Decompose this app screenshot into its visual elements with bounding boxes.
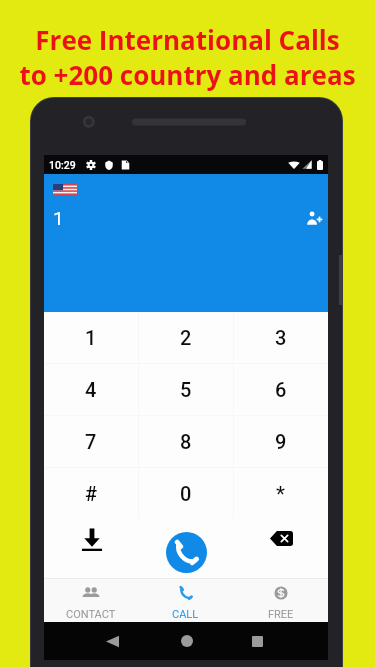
staticText: 4: [85, 378, 97, 401]
button[interactable]: *: [233, 467, 328, 519]
button[interactable]: 6: [233, 363, 328, 415]
staticText: to +200 country and areas: [19, 57, 356, 92]
staticText: CALL: [172, 608, 199, 621]
button[interactable]: 1: [44, 312, 138, 363]
button[interactable]: Call: [166, 532, 207, 573]
button[interactable]: CALL: [138, 579, 233, 622]
staticText: 6: [275, 378, 287, 401]
staticText: FREE: [268, 608, 294, 621]
button[interactable]: Backspace: [268, 526, 295, 551]
button[interactable]: FREE: [233, 579, 328, 622]
staticText: 2: [180, 326, 192, 349]
staticText: 3: [275, 326, 287, 349]
staticText: 9: [275, 430, 287, 453]
button[interactable]: 4: [44, 363, 138, 415]
button[interactable]: 9: [233, 415, 328, 467]
staticText: #: [85, 482, 98, 505]
button[interactable]: #: [44, 467, 138, 519]
button[interactable]: 0: [138, 467, 233, 519]
button[interactable]: CONTACT: [44, 579, 138, 622]
button[interactable]: 2: [138, 312, 233, 363]
button[interactable]: 3: [233, 312, 328, 363]
staticText: 7: [85, 430, 97, 453]
button[interactable]: 5: [138, 363, 233, 415]
staticText: CONTACT: [66, 608, 116, 621]
button[interactable]: Home: [171, 622, 203, 660]
staticText: 1: [53, 207, 64, 229]
button[interactable]: 7: [44, 415, 138, 467]
button[interactable]: 8: [138, 415, 233, 467]
button[interactable]: Save number: [80, 527, 104, 551]
staticText: 5: [180, 378, 192, 401]
staticText: 8: [180, 430, 192, 453]
staticText: Free International Calls: [35, 22, 340, 57]
staticText: *: [276, 482, 285, 505]
button[interactable]: Add contact: [301, 204, 327, 230]
button[interactable]: Recent apps: [241, 622, 273, 660]
staticText: 0: [180, 482, 192, 505]
button[interactable]: Back: [96, 622, 128, 660]
staticText: 1: [85, 326, 97, 349]
staticText: 10:29: [49, 159, 76, 171]
